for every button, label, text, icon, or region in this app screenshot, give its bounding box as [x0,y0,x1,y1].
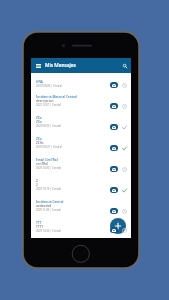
staticText: HNA [36,80,43,84]
button[interactable]: Entregado [121,124,127,130]
staticText: ZXo [36,120,42,124]
staticText: ZXo [36,116,42,120]
staticText: cenTRal [36,162,48,166]
button[interactable]: Incidencia Material Central [31,95,131,116]
button[interactable]: Abrir mensaje [110,227,118,233]
button[interactable]: ZXo [31,116,131,137]
staticText: 2029 13:00 | Central [36,166,61,170]
button[interactable]: Abrir mensaje [110,166,118,172]
button[interactable]: HNA [31,74,131,95]
button[interactable]: Pendiente [121,103,127,109]
staticText: Email CenTRal [36,158,58,162]
button[interactable]: Abrir mensaje [110,187,118,193]
button[interactable]: Abrir mensaje [110,124,118,130]
button[interactable]: Pendiente [121,166,127,172]
staticText: aodeoded [36,204,52,208]
button[interactable]: Abrir mensaje [110,145,118,151]
staticText: 2029 11:00 | Central [36,208,61,212]
staticText: Mis Mensajes [45,62,76,69]
button[interactable]: Pendiente [121,227,127,233]
staticText: 2 [36,183,38,187]
staticText: 2022 12:07 | Central [36,103,61,107]
button[interactable]: ZXo [31,137,131,158]
staticText: Incidencia Central [36,200,64,204]
staticText: 26/01 09:00 | Central [36,84,62,88]
button[interactable]: 2 [31,179,131,200]
button[interactable]: Menu [34,61,43,70]
staticText: 2029 13:19 | Central [36,187,61,191]
button[interactable]: Abrir mensaje [110,103,118,109]
staticText: ZZXo [36,141,44,145]
staticText: 2029 13:26 | Central [36,229,61,233]
staticText: TTTT [36,225,44,229]
staticText: 26/01 09:21 | Central [36,145,62,149]
button[interactable]: Incidencia Central [31,200,131,221]
button[interactable]: Abrir mensaje [110,82,118,88]
button[interactable]: TTT [31,221,131,238]
button[interactable]: Pendiente [121,82,127,88]
staticText: TTT [36,221,42,225]
staticText: 2029 09:30 | Central [36,124,61,128]
button[interactable]: Pendiente [121,208,127,214]
button[interactable]: Nuevo mensaje [110,218,126,234]
staticText: descripcion [36,99,54,103]
staticText: 2 [36,179,38,183]
button[interactable]: Buscar [120,61,129,70]
button[interactable]: Entregado [121,145,127,151]
button[interactable]: Email CenTRal [31,158,131,179]
staticText: ZXo [36,137,42,141]
staticText: Incidencia Material Central [36,95,77,99]
button[interactable]: Abrir mensaje [110,208,118,214]
button[interactable]: Entregado [121,187,127,193]
